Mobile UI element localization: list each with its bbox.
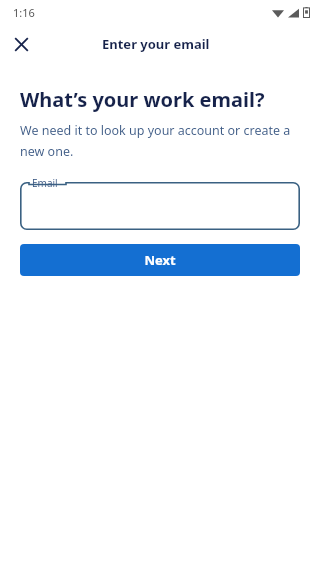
staticText: Email (32, 176, 58, 190)
staticText: We need it to look up your account or cr… (20, 122, 304, 160)
button[interactable]: Next (20, 244, 300, 276)
staticText: Enter your email (102, 35, 210, 53)
staticText: Next (144, 251, 176, 269)
staticText: What’s your work email? (20, 86, 265, 113)
button[interactable]: Email (20, 182, 300, 230)
staticText: 1:16 (13, 5, 35, 20)
button[interactable]: Close (7, 30, 35, 58)
